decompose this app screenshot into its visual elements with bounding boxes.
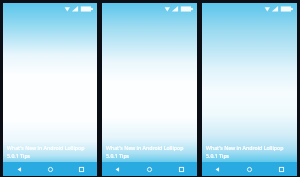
button[interactable]: Recents: [66, 162, 97, 176]
staticText: What's New in Android Lollipop: [106, 144, 184, 151]
staticText: 5.0.1 Tips: [106, 152, 130, 159]
other: Status icons: [164, 5, 194, 13]
button[interactable]: Home: [133, 162, 165, 176]
button[interactable]: Back: [102, 162, 133, 176]
other: Status icons: [264, 5, 294, 13]
button[interactable]: Recents: [265, 162, 297, 176]
staticText: What's New in Android Lollipop: [7, 144, 85, 151]
button[interactable]: What's New in Android Lollipop: [102, 144, 197, 162]
button[interactable]: Home: [233, 162, 265, 176]
button[interactable]: Back: [202, 162, 233, 176]
staticText: 5.0.1 Tips: [206, 152, 230, 159]
button[interactable]: What's New in Android Lollipop: [202, 144, 297, 162]
button[interactable]: Recents: [165, 162, 197, 176]
button[interactable]: Home: [35, 162, 66, 176]
staticText: What's New in Android Lollipop: [206, 144, 284, 151]
staticText: 5.0.1 Tips: [7, 152, 31, 159]
button[interactable]: What's New in Android Lollipop: [3, 144, 97, 162]
other: Status icons: [64, 5, 94, 13]
button[interactable]: Back: [3, 162, 35, 176]
